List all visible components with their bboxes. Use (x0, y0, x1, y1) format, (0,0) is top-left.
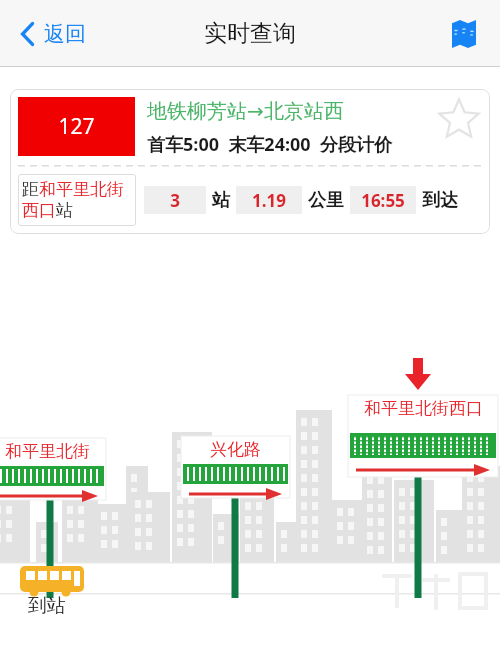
button[interactable]: 127 (10, 89, 490, 234)
staticText: 到达 (422, 189, 458, 212)
staticText: 16:55 (361, 189, 405, 212)
staticText: 实时查询 (204, 19, 296, 48)
button[interactable]: 到站 (28, 594, 66, 618)
staticText: 距 (22, 179, 39, 200)
staticText: 127 (58, 112, 95, 141)
button[interactable]: 返回 (14, 15, 92, 53)
staticText: 西口 (22, 200, 56, 221)
staticText: 到站 (28, 594, 66, 618)
staticText: 兴化路 (210, 439, 261, 460)
staticText: 返回 (44, 21, 86, 47)
staticText: 和平里北街西口 (364, 398, 483, 419)
staticText: 站 (212, 189, 230, 212)
staticText: 站 (56, 200, 73, 221)
staticText: 和平里北街 (5, 441, 90, 462)
staticText: 公里 (308, 189, 344, 212)
staticText: 1.19 (252, 189, 286, 212)
staticText: 3 (170, 189, 180, 212)
staticText: 和平里北街 (39, 179, 124, 200)
button[interactable]: Favorite (436, 97, 482, 143)
button[interactable]: Map (444, 14, 484, 54)
staticText: 地铁柳芳站→北京站西 (147, 99, 344, 124)
staticText: 首车5:00 末车24:00 分段计价 (147, 132, 392, 157)
